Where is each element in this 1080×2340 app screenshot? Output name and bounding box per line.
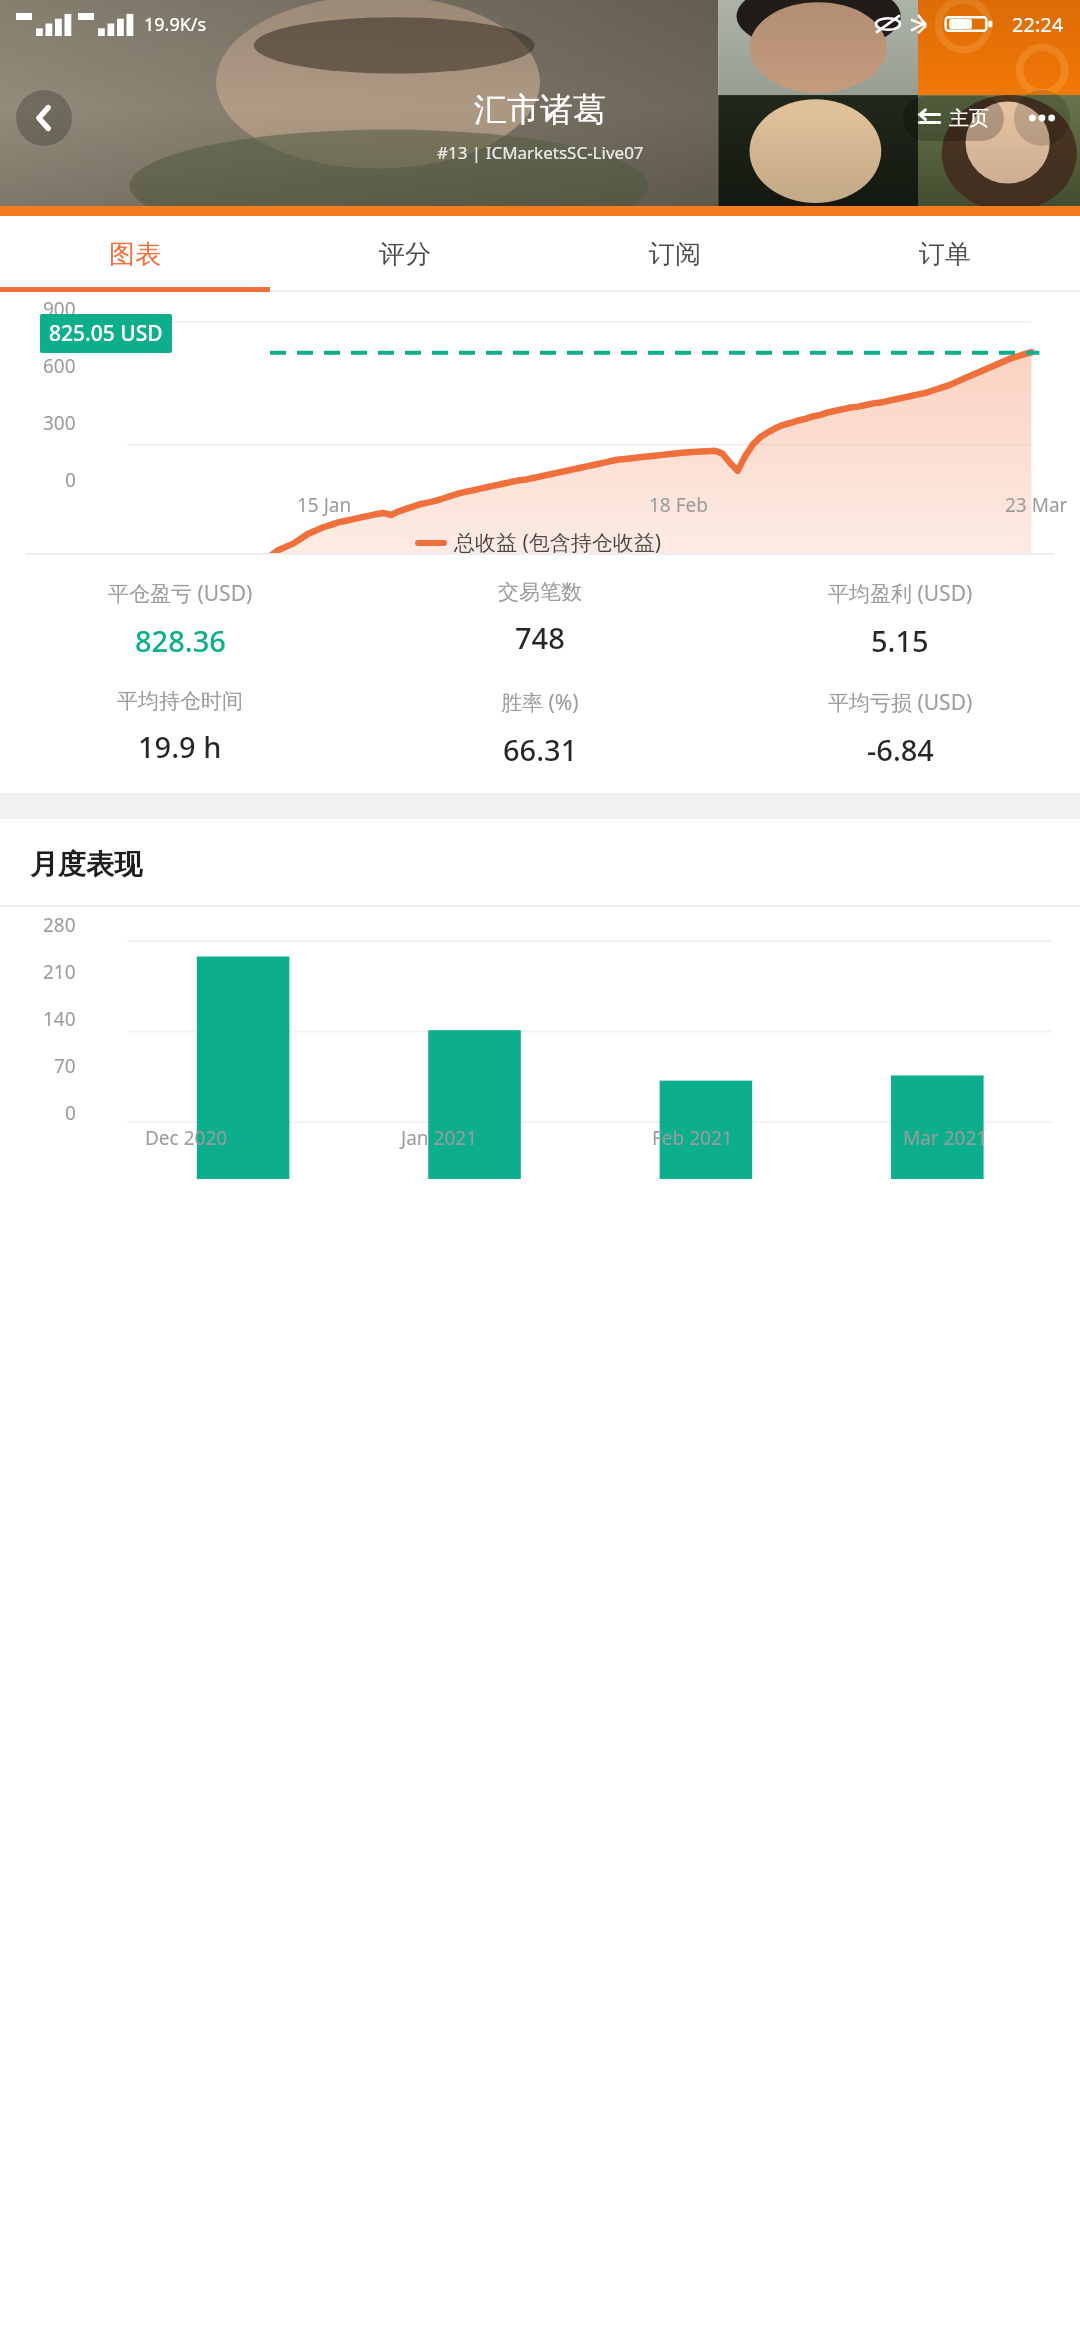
staticText: 19.9K/s: [144, 12, 207, 37]
staticText: 828.36: [135, 621, 226, 660]
button[interactable]: 主页: [903, 96, 1004, 141]
staticText: #13 | ICMarketsSC-Live07: [437, 141, 644, 164]
staticText: 平均盈利 (USD): [828, 579, 973, 608]
button[interactable]: 订阅: [540, 216, 810, 292]
staticText: 0: [65, 1100, 76, 1126]
staticText: 280: [43, 912, 76, 938]
staticText: 18 Feb: [649, 492, 708, 518]
staticText: 交易笔数: [498, 579, 582, 605]
staticText: 23 Mar: [1005, 492, 1068, 518]
staticText: 平均持仓时间: [117, 688, 243, 714]
staticText: 图表: [109, 238, 161, 271]
staticText: 300: [43, 410, 76, 436]
staticText: 0: [65, 467, 76, 493]
staticText: 5.15: [871, 621, 929, 660]
button[interactable]: 平仓盈亏 (USD): [0, 579, 360, 660]
button[interactable]: Back: [16, 90, 72, 146]
staticText: 评分: [379, 238, 431, 271]
staticText: 平仓盈亏 (USD): [108, 579, 253, 608]
staticText: 主页: [949, 106, 989, 131]
staticText: 66.31: [503, 730, 578, 769]
button[interactable]: 图表: [0, 216, 270, 292]
button[interactable]: 评分: [270, 216, 540, 292]
button[interactable]: 胜率 (%): [360, 688, 720, 769]
staticText: Dec 2020: [145, 1125, 228, 1151]
staticText: 600: [43, 353, 76, 379]
staticText: 胜率 (%): [501, 688, 579, 717]
staticText: 825.05 USD: [49, 319, 163, 348]
staticText: 月度表现: [30, 847, 142, 882]
staticText: 900: [43, 296, 76, 322]
button[interactable]: More options: [1014, 90, 1070, 146]
staticText: 订单: [919, 238, 971, 271]
staticText: 平均亏损 (USD): [828, 688, 973, 717]
staticText: Feb 2021: [652, 1125, 733, 1151]
button[interactable]: 平均盈利 (USD): [720, 579, 1080, 660]
staticText: 70: [54, 1053, 76, 1079]
staticText: 19.9 h: [138, 727, 222, 766]
staticText: 订阅: [649, 238, 701, 271]
staticText: 748: [515, 618, 565, 657]
button[interactable]: 交易笔数: [360, 579, 720, 657]
staticText: 210: [43, 959, 76, 985]
button[interactable]: 平均亏损 (USD): [720, 688, 1080, 769]
staticText: -6.84: [867, 730, 934, 769]
staticText: Jan 2021: [401, 1125, 478, 1151]
button[interactable]: 订单: [810, 216, 1080, 292]
button[interactable]: 平均持仓时间: [0, 688, 360, 766]
staticText: 汇市诸葛: [474, 89, 606, 131]
staticText: Mar 2021: [903, 1125, 988, 1151]
staticText: 140: [43, 1006, 76, 1032]
staticText: 总收益 (包含持仓收益): [454, 528, 662, 557]
staticText: 22:24: [1012, 11, 1064, 38]
staticText: 15 Jan: [297, 492, 352, 518]
